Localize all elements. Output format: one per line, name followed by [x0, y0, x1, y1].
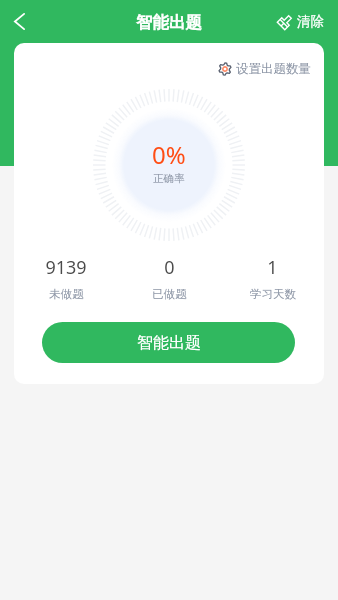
staticText: 0% [152, 138, 186, 171]
staticText: 1 [267, 255, 278, 280]
staticText: 正确率 [153, 172, 185, 185]
staticText: 智能出题 [136, 12, 202, 33]
staticText: 0 [164, 255, 175, 280]
staticText: 设置出题数量 [236, 61, 311, 77]
staticText: 智能出题 [137, 333, 201, 353]
button[interactable]: 清除 [277, 13, 324, 30]
staticText: 未做题 [49, 287, 84, 301]
button[interactable]: 智能出题 [42, 322, 295, 363]
staticText: 已做题 [152, 287, 187, 301]
staticText: 9139 [45, 255, 87, 280]
staticText: 清除 [297, 13, 324, 30]
button[interactable]: 设置出题数量 [218, 61, 311, 77]
staticText: 学习天数 [250, 287, 296, 301]
button[interactable]: Back [1, 4, 37, 40]
